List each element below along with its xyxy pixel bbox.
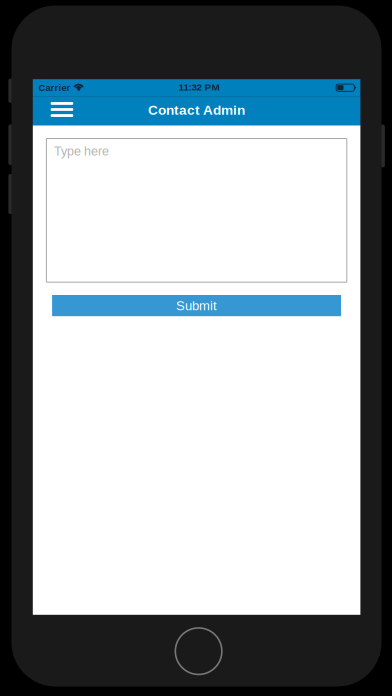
staticText: Type here — [54, 144, 109, 158]
staticText: Submit — [176, 298, 217, 313]
staticText: Carrier — [39, 82, 71, 93]
button[interactable]: Menu — [33, 95, 91, 124]
button[interactable]: Submit — [52, 295, 341, 316]
staticText: 11:32 PM — [178, 82, 219, 93]
staticText: Contact Admin — [148, 102, 245, 118]
